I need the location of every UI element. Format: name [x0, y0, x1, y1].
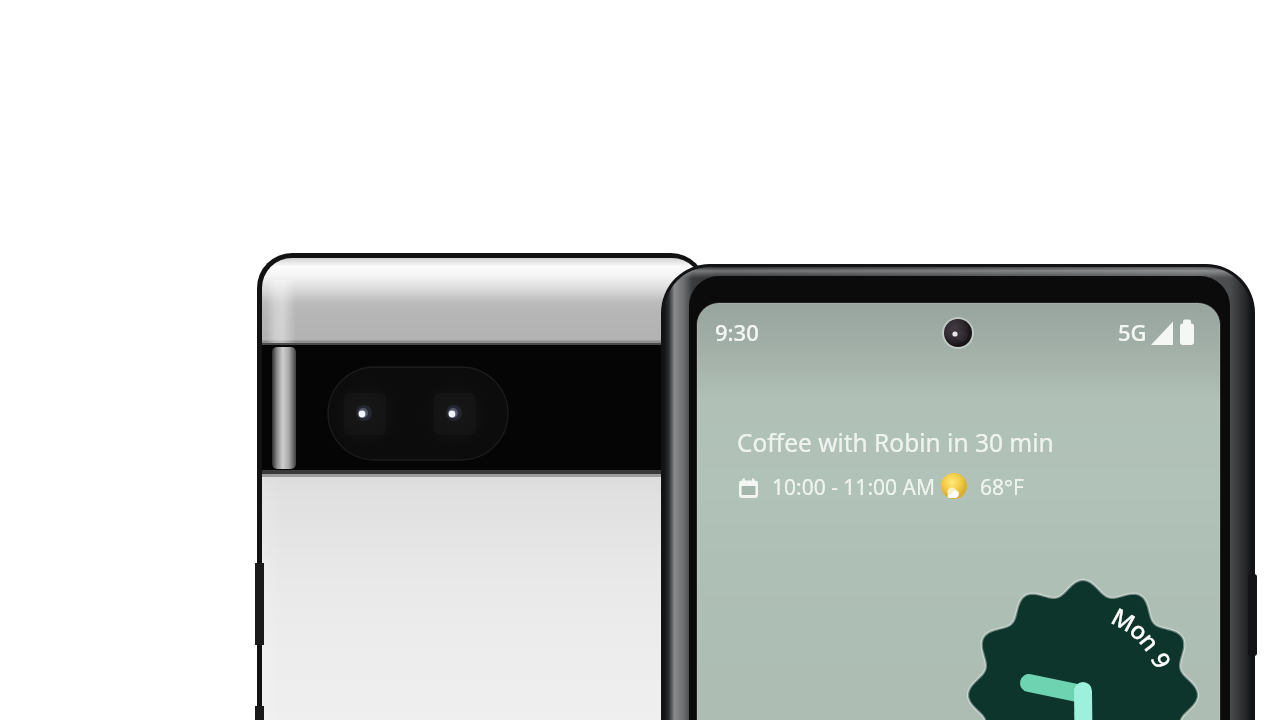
button[interactable]: Clock widget, Mon 9, 9:30 — [968, 580, 1198, 720]
staticText: 9:30 — [715, 317, 759, 347]
staticText: 10:00 - 11:00 AM — [772, 473, 935, 502]
button[interactable]: Power button — [1244, 574, 1258, 658]
staticText: Coffee with Robin in 30 min — [737, 426, 1054, 459]
staticText: 5G — [1118, 317, 1147, 347]
button[interactable]: Coffee with Robin in 30 min — [730, 424, 1070, 508]
button[interactable]: Volume buttons — [252, 563, 266, 647]
staticText: 68°F — [980, 473, 1024, 502]
